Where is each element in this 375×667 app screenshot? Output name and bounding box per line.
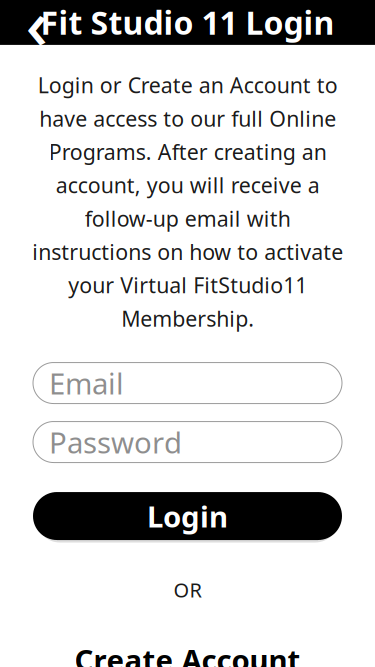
button[interactable]: Back — [8, 0, 66, 45]
staticText: OR — [173, 576, 201, 603]
staticText: Create Account — [74, 640, 300, 667]
button[interactable]: Create Account — [0, 636, 375, 667]
staticText: Login — [147, 497, 228, 536]
staticText: Email — [49, 364, 124, 403]
staticText: Fit Studio 11 Login — [40, 1, 334, 44]
staticText: Password — [49, 423, 182, 462]
staticText: ‹ — [25, 0, 48, 68]
button[interactable]: Login — [0, 489, 375, 542]
staticText: Login or Create an Account to have acces… — [32, 71, 343, 332]
